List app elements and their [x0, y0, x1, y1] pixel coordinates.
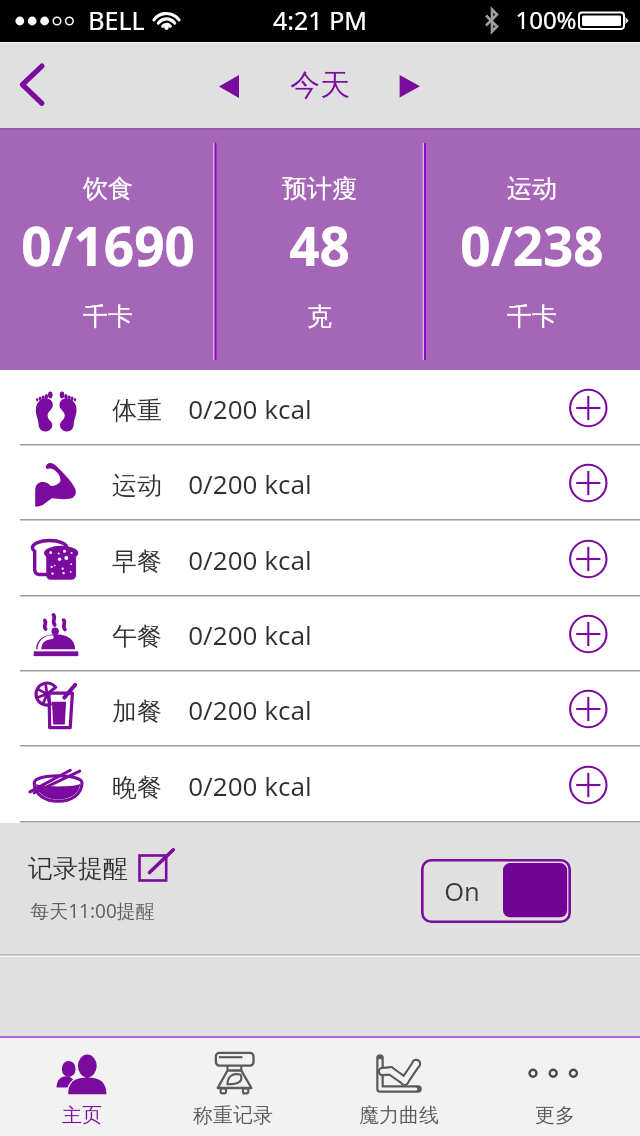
staticText: 预计瘦 — [282, 173, 357, 204]
button[interactable]: 早餐 — [0, 521, 640, 596]
button[interactable]: 午餐 — [0, 596, 640, 671]
button[interactable]: 称重记录 — [160, 1039, 320, 1136]
staticText: 晚餐 — [112, 772, 162, 803]
staticText: 每天11:00提醒 — [30, 898, 155, 924]
staticText: 今天 — [290, 66, 350, 104]
button[interactable]: 魔力曲线 — [320, 1039, 480, 1136]
button[interactable]: 晚餐 — [0, 747, 640, 822]
staticText: 0/200 kcal — [188, 692, 312, 727]
button[interactable]: Add 晚餐 — [563, 760, 613, 810]
staticText: On — [444, 874, 480, 909]
staticText: 加餐 — [112, 696, 162, 727]
staticText: 千卡 — [507, 301, 557, 332]
staticText: 100% — [515, 3, 577, 33]
button[interactable]: Reminder on — [421, 859, 571, 923]
staticText: 0/238 — [460, 209, 604, 275]
staticText: 0/200 kcal — [188, 768, 312, 803]
staticText: 0/200 kcal — [188, 466, 312, 501]
button[interactable]: 加餐 — [0, 671, 640, 746]
staticText: BELL — [88, 3, 145, 33]
staticText: 体重 — [112, 395, 162, 426]
staticText: 4:21 PM — [273, 3, 367, 33]
button[interactable]: 预计瘦 — [215, 128, 424, 370]
staticText: 称重记录 — [193, 1103, 273, 1128]
button[interactable]: Previous day — [206, 61, 254, 109]
button[interactable]: Add 运动 — [563, 458, 613, 508]
staticText: 运动 — [507, 173, 557, 204]
button[interactable]: 记录提醒 — [0, 823, 400, 955]
button[interactable]: Add 加餐 — [563, 684, 613, 734]
button[interactable]: 运动 — [0, 445, 640, 520]
button[interactable]: 更多 — [480, 1039, 640, 1136]
staticText: 饮食 — [83, 173, 133, 204]
staticText: 主页 — [62, 1103, 102, 1128]
staticText: 克 — [307, 301, 332, 332]
staticText: 更多 — [535, 1103, 575, 1128]
button[interactable]: Add 体重 — [563, 383, 613, 433]
staticText: 48 — [289, 209, 350, 275]
button[interactable]: Back — [2, 55, 60, 117]
button[interactable]: Add 午餐 — [563, 609, 613, 659]
staticText: 记录提醒 — [28, 853, 128, 884]
button[interactable]: 运动 — [424, 128, 640, 370]
button[interactable]: 主页 — [0, 1039, 160, 1136]
staticText: 午餐 — [112, 621, 162, 652]
button[interactable]: 饮食 — [0, 128, 215, 370]
button[interactable]: 今天 — [270, 55, 370, 115]
staticText: 0/200 kcal — [188, 542, 312, 577]
button[interactable]: Add 早餐 — [563, 534, 613, 584]
staticText: 0/200 kcal — [188, 617, 312, 652]
staticText: 运动 — [112, 470, 162, 501]
button[interactable]: Next day — [386, 61, 434, 109]
staticText: 千卡 — [83, 301, 133, 332]
staticText: 魔力曲线 — [359, 1103, 439, 1128]
staticText: 0/200 kcal — [188, 391, 312, 426]
staticText: 0/1690 — [21, 209, 195, 275]
staticText: 早餐 — [112, 546, 162, 577]
button[interactable]: 体重 — [0, 370, 640, 445]
